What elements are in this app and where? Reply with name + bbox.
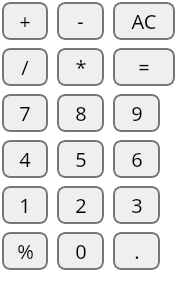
staticText: 7 (19, 100, 31, 127)
button[interactable]: * (57, 48, 104, 86)
staticText: % (17, 238, 34, 265)
staticText: - (77, 8, 84, 35)
button[interactable]: % (2, 232, 48, 270)
button[interactable]: 4 (2, 140, 48, 178)
staticText: 2 (75, 192, 87, 219)
staticText: 0 (75, 238, 87, 265)
staticText: 5 (75, 146, 87, 173)
button[interactable]: 6 (113, 140, 160, 178)
staticText: 9 (131, 100, 143, 127)
staticText: 3 (131, 192, 143, 219)
staticText: * (75, 54, 87, 81)
button[interactable]: 7 (2, 94, 48, 132)
staticText: + (19, 8, 31, 35)
button[interactable]: 5 (57, 140, 104, 178)
button[interactable]: / (2, 48, 48, 86)
staticText: / (21, 54, 29, 81)
staticText: 8 (75, 100, 87, 127)
button[interactable]: 8 (57, 94, 104, 132)
button[interactable]: 2 (57, 186, 104, 224)
button[interactable]: 9 (113, 94, 160, 132)
button[interactable]: - (57, 2, 104, 40)
button[interactable]: + (2, 2, 48, 40)
button[interactable]: 0 (57, 232, 104, 270)
staticText: 4 (19, 146, 31, 173)
button[interactable]: 1 (2, 186, 48, 224)
staticText: 1 (19, 192, 31, 219)
staticText: 6 (131, 146, 143, 173)
button[interactable]: AC (113, 2, 175, 40)
staticText: AC (131, 8, 157, 35)
staticText: . (134, 238, 140, 265)
button[interactable]: = (113, 48, 175, 86)
staticText: = (138, 54, 150, 81)
button[interactable]: 3 (113, 186, 160, 224)
button[interactable]: . (113, 232, 160, 270)
